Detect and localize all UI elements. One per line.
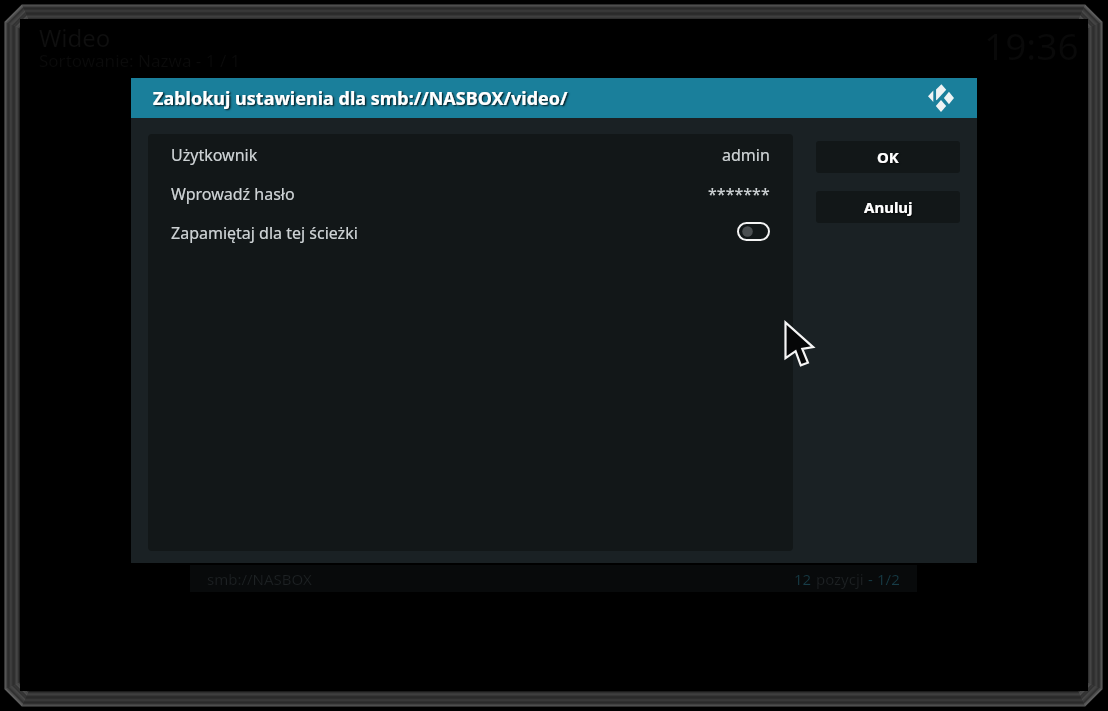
staticText: admin bbox=[722, 144, 770, 166]
button[interactable]: OK bbox=[816, 141, 960, 173]
button[interactable]: Zapamiętaj dla tej ścieżki bbox=[148, 213, 793, 252]
staticText: smb://NASBOX bbox=[207, 569, 312, 589]
button[interactable]: Zapamiętaj dla tej ścieżki bbox=[737, 222, 770, 241]
button[interactable]: Wprowadź hasło bbox=[148, 174, 793, 213]
staticText: - bbox=[868, 569, 877, 589]
staticText: Użytkownik bbox=[171, 144, 258, 166]
button[interactable]: Anuluj bbox=[816, 191, 960, 223]
staticText: 12 bbox=[794, 569, 812, 589]
staticText: pozycji bbox=[812, 569, 868, 589]
staticText: Wideo bbox=[39, 21, 111, 54]
other: Kodi bbox=[928, 84, 954, 112]
staticText: Wprowadź hasło bbox=[171, 183, 295, 205]
staticText: Anuluj bbox=[864, 197, 913, 217]
staticText: ******* bbox=[708, 183, 770, 205]
staticText: Zablokuj ustawienia dla smb://NASBOX/vid… bbox=[153, 86, 568, 111]
staticText: Zapamiętaj dla tej ścieżki bbox=[171, 222, 358, 244]
staticText: 1/2 bbox=[877, 569, 900, 589]
staticText: OK bbox=[877, 147, 899, 167]
button[interactable]: Użytkownik bbox=[148, 135, 793, 174]
